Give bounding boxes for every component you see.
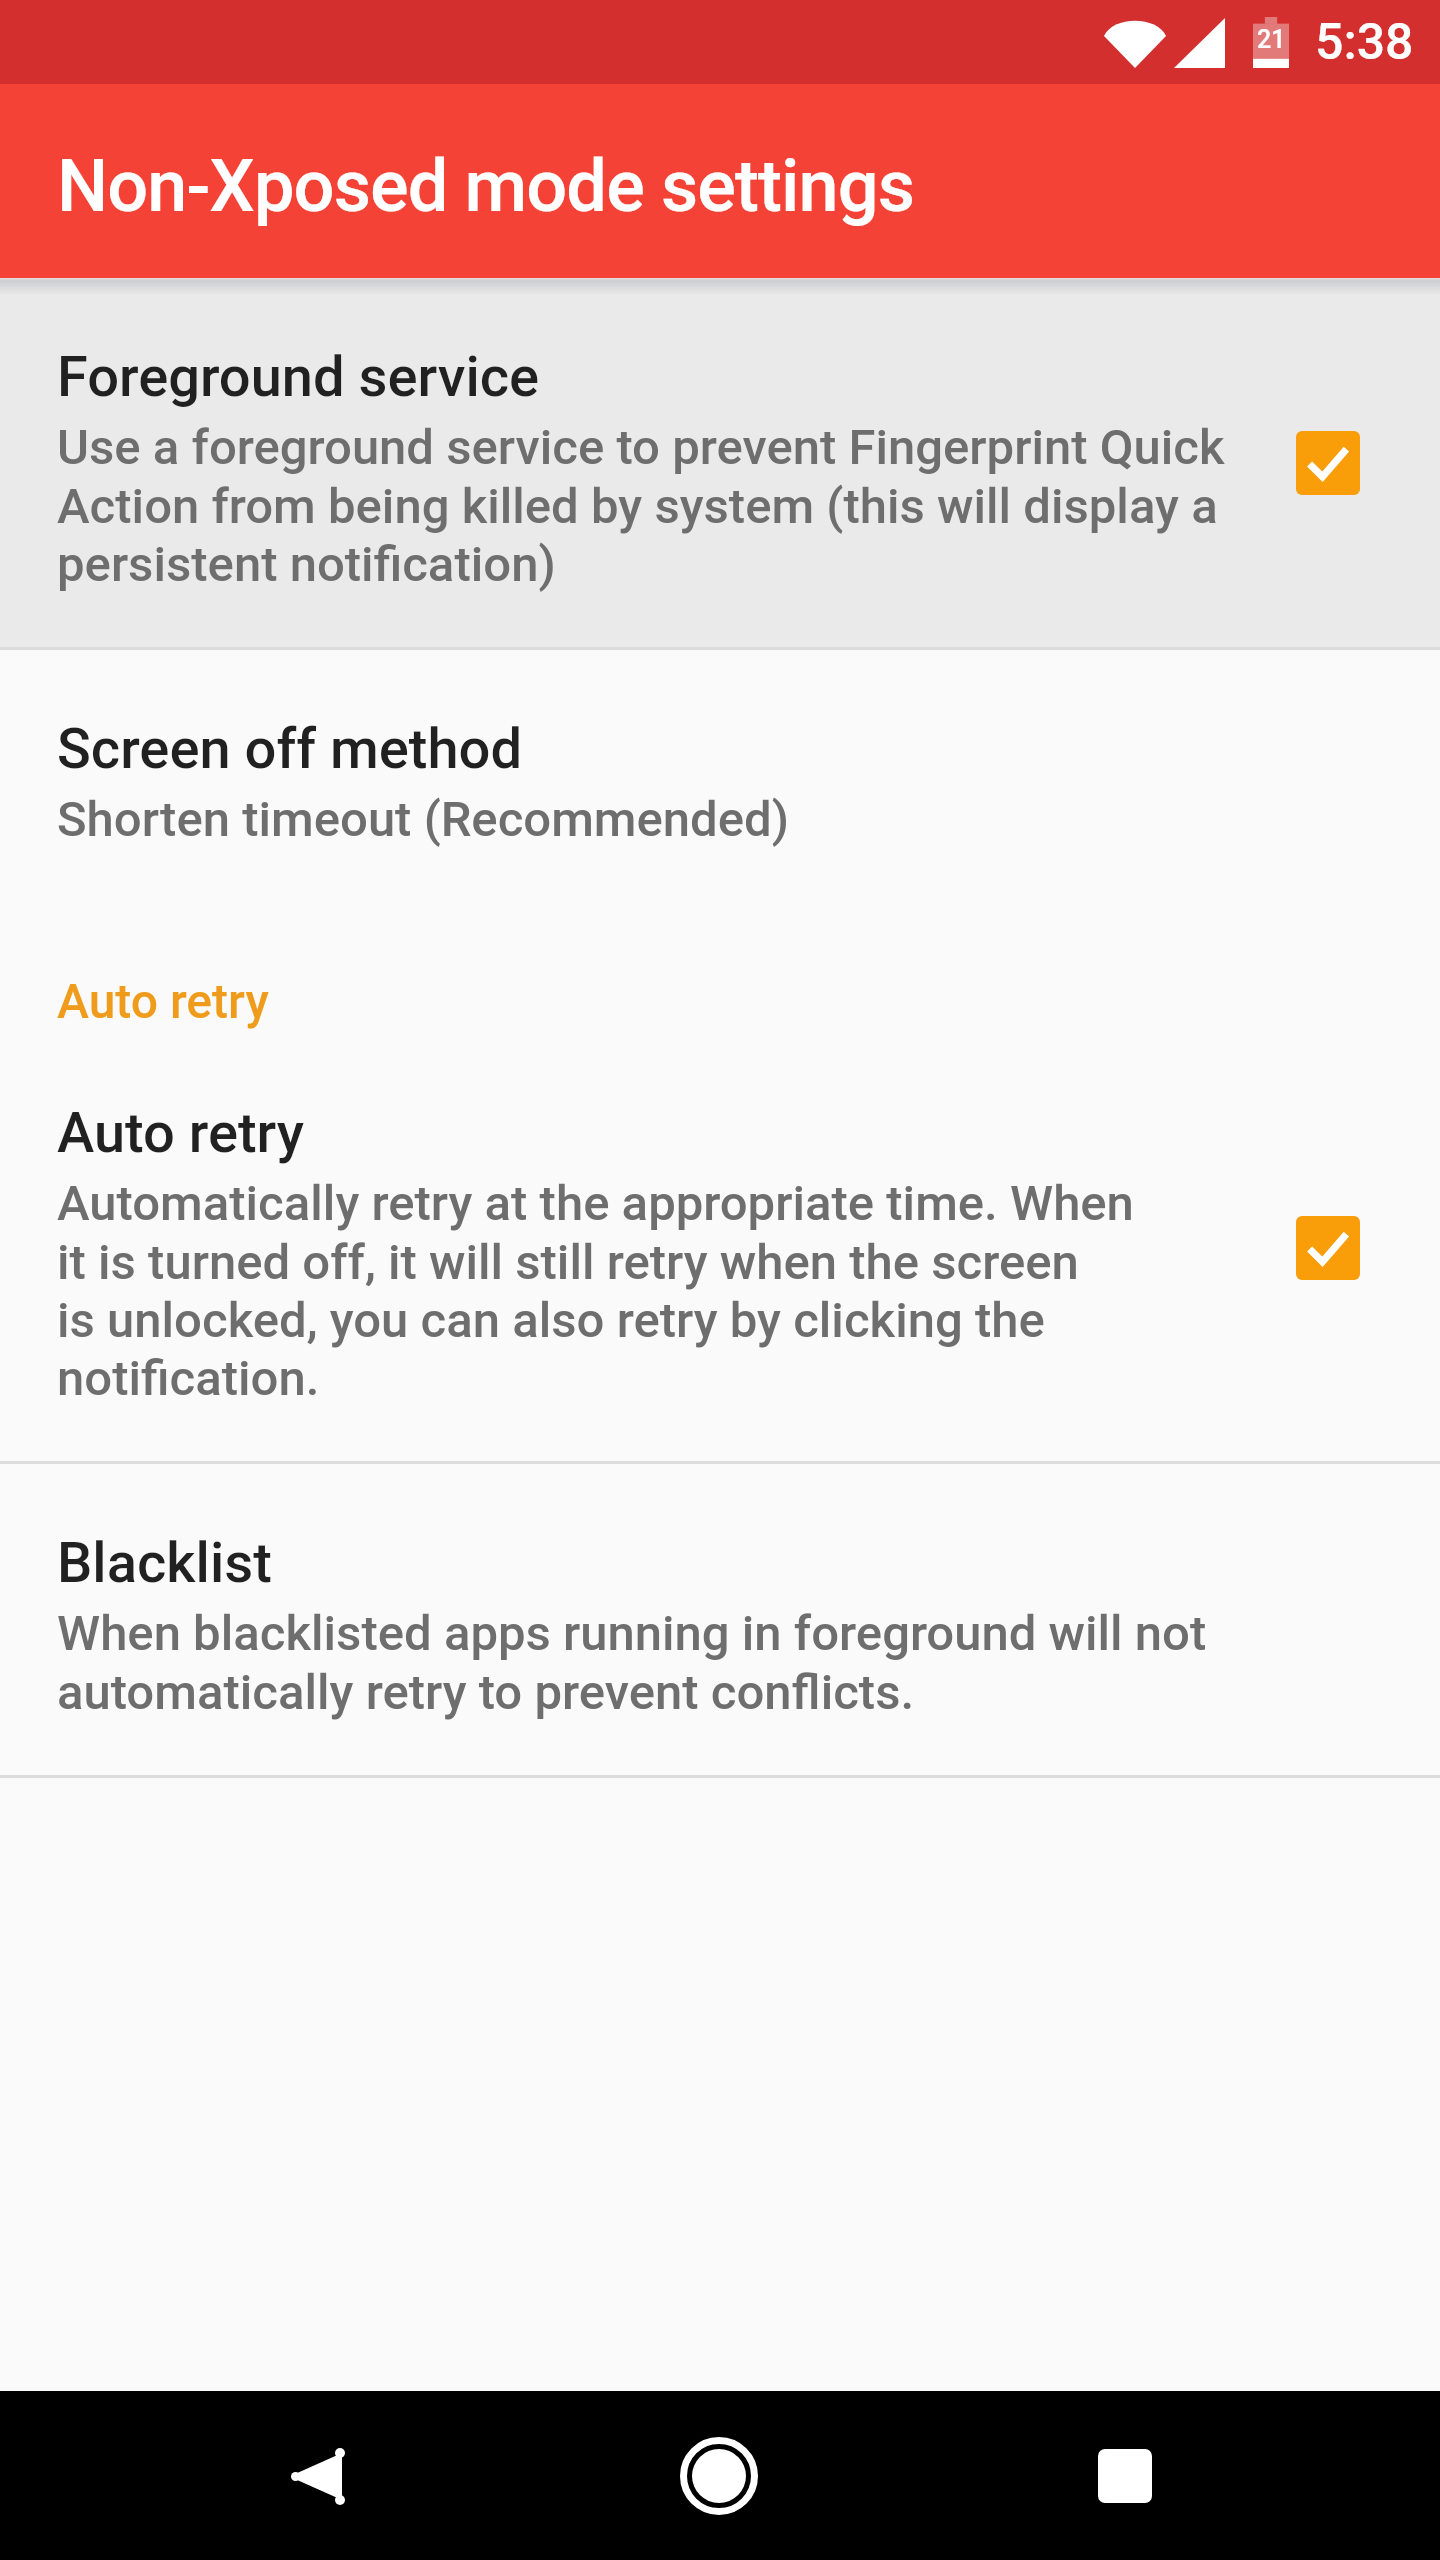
staticText: Foreground service xyxy=(57,344,540,410)
button[interactable]: Foreground service xyxy=(0,278,1440,647)
staticText: Auto retry xyxy=(57,1100,305,1166)
staticText: Screen off method xyxy=(57,716,523,782)
button[interactable]: Recent apps xyxy=(1050,2401,1200,2551)
button[interactable]: Auto retry xyxy=(0,1029,1440,1461)
button[interactable]: Blacklist xyxy=(0,1464,1440,1775)
staticText: 5:38 xyxy=(1315,13,1414,72)
button[interactable]: Home xyxy=(644,2401,794,2551)
staticText: Automatically retry at the appropriate t… xyxy=(57,1175,1134,1407)
staticText: When blacklisted apps running in foregro… xyxy=(57,1605,1207,1721)
staticText: Shorten timeout (Recommended) xyxy=(57,791,790,848)
staticText: Use a foreground service to prevent Fing… xyxy=(57,419,1225,593)
staticText: Blacklist xyxy=(57,1530,272,1596)
staticText: 21 xyxy=(1257,25,1286,54)
other: Toggle Auto retry xyxy=(1296,1216,1360,1280)
staticText: Non-Xposed mode settings xyxy=(57,144,914,228)
other: Toggle Foreground service xyxy=(1296,431,1360,495)
staticText: Auto retry xyxy=(57,973,269,1029)
button[interactable]: Screen off method xyxy=(0,650,1440,846)
button[interactable]: Back xyxy=(241,2401,391,2551)
